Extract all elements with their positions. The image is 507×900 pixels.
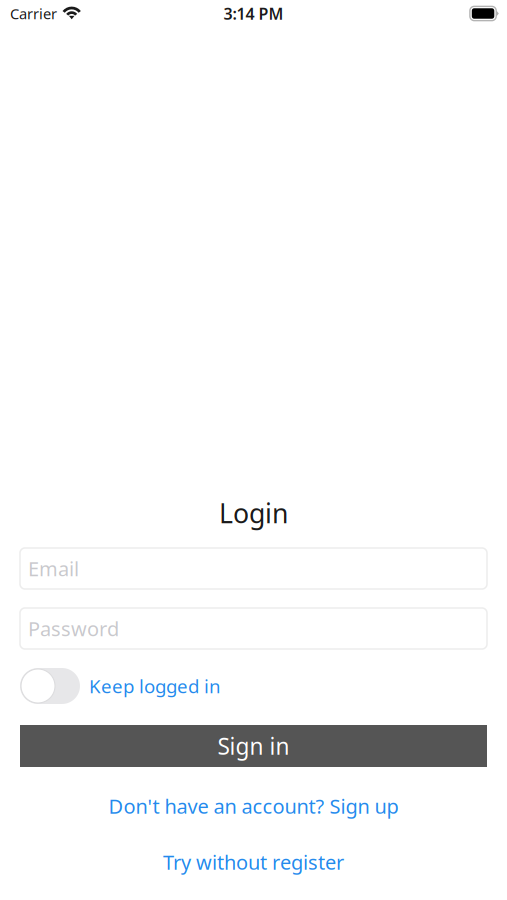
button[interactable]: Try without register [20, 851, 487, 873]
button[interactable]: Don't have an account? Sign up [20, 795, 487, 817]
staticText: Password [28, 615, 119, 642]
button[interactable]: Email [20, 548, 487, 589]
staticText: Sign in [217, 731, 289, 761]
staticText: Carrier [10, 4, 57, 23]
staticText: Login [219, 495, 288, 531]
staticText: Try without register [163, 849, 344, 875]
staticText: Keep logged in [89, 674, 221, 698]
button[interactable]: Sign in [20, 725, 487, 767]
button[interactable]: Password [20, 608, 487, 649]
staticText: Email [28, 555, 79, 582]
staticText: Don't have an account? Sign up [108, 793, 398, 819]
staticText: 3:14 PM [223, 3, 283, 24]
button[interactable]: Keep logged in [20, 668, 487, 704]
